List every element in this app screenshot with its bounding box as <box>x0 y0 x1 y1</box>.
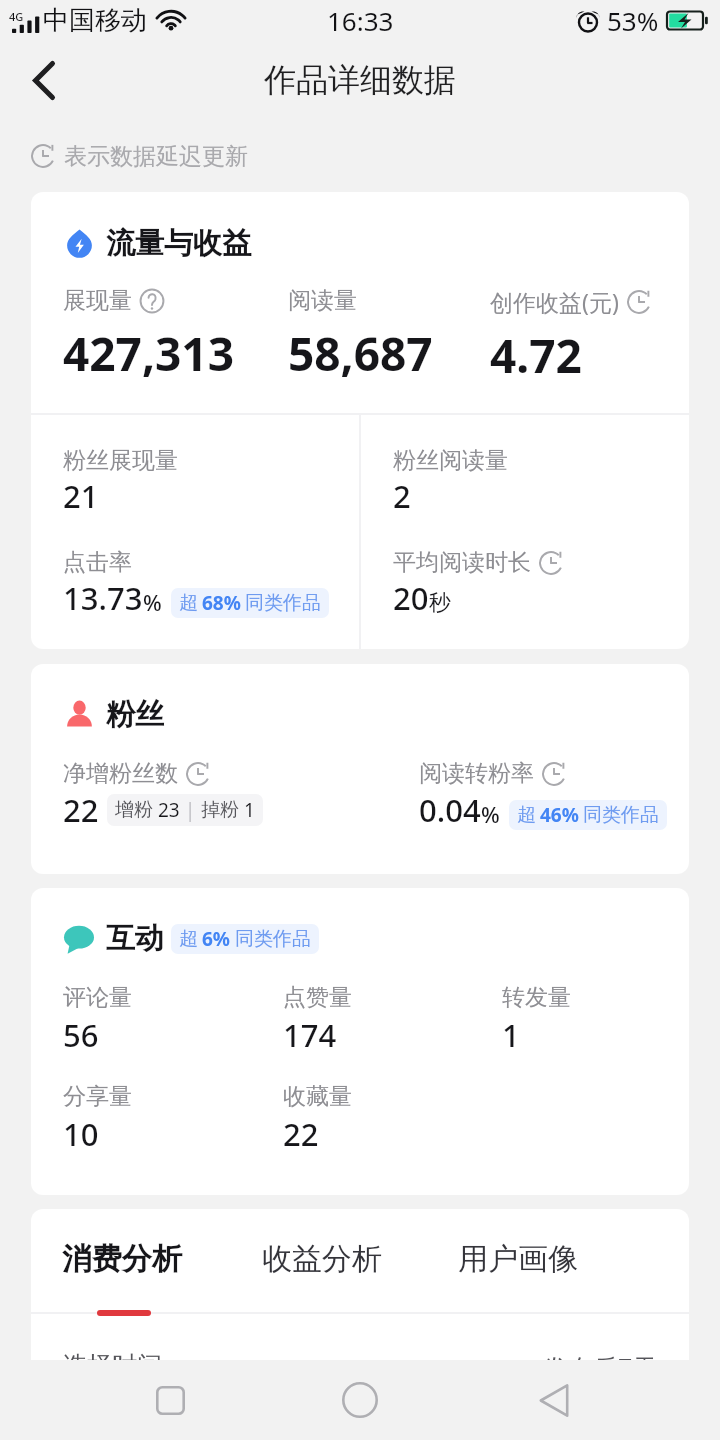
staticText: 阅读转粉率 <box>419 759 534 788</box>
staticText: 20 <box>393 577 429 619</box>
staticText: 22 <box>283 1113 319 1155</box>
button[interactable]: 收益分析 <box>262 1240 458 1312</box>
staticText: 1 <box>502 1014 520 1056</box>
button[interactable]: Home <box>290 1360 430 1440</box>
staticText: 超 <box>179 591 198 615</box>
staticText: 4.72 <box>490 324 582 387</box>
staticText: 表示数据延迟更新 <box>64 142 248 171</box>
staticText: 用户画像 <box>458 1240 578 1278</box>
staticText: 1 <box>244 797 255 823</box>
staticText: 作品详细数据 <box>264 60 456 100</box>
staticText: 427,313 <box>63 322 234 385</box>
staticText: 净增粉丝数 <box>63 759 178 788</box>
staticText: 同类作品 <box>583 803 659 827</box>
staticText: 10 <box>63 1113 99 1155</box>
staticText: 点击率 <box>63 548 132 577</box>
staticText: | <box>185 797 196 823</box>
staticText: 58,687 <box>288 322 433 385</box>
staticText: 中国移动 <box>43 4 147 37</box>
button[interactable]: 用户画像 <box>458 1240 689 1312</box>
staticText: 0.04 <box>419 789 481 831</box>
staticText: 13.73 <box>63 577 143 619</box>
staticText: 超 <box>179 927 198 951</box>
staticText: 秒 <box>429 589 451 617</box>
staticText: 转发量 <box>502 983 571 1012</box>
staticText: % <box>143 587 162 617</box>
button[interactable]: Recent apps <box>100 1360 240 1440</box>
staticText: 174 <box>283 1014 337 1056</box>
staticText: 53% <box>607 3 659 38</box>
staticText: 68% <box>202 590 241 616</box>
staticText: 掉粉 <box>201 798 239 822</box>
staticText: 56 <box>63 1014 99 1056</box>
button[interactable]: Back <box>0 40 88 120</box>
staticText: 4G <box>9 9 24 24</box>
button[interactable]: 消费分析 <box>62 1240 262 1312</box>
staticText: 2 <box>393 475 411 517</box>
staticText: 展现量 <box>63 286 132 315</box>
staticText: 分享量 <box>63 1082 132 1111</box>
staticText: % <box>481 799 500 829</box>
staticText: 增粉 <box>115 798 153 822</box>
staticText: 流量与收益 <box>106 225 251 262</box>
staticText: 21 <box>63 475 99 517</box>
staticText: 收益分析 <box>262 1240 382 1278</box>
staticText: 16:33 <box>327 3 394 38</box>
staticText: 同类作品 <box>245 591 321 615</box>
staticText: 发布后7天 <box>543 1350 658 1384</box>
staticText: 粉丝展现量 <box>63 446 178 475</box>
staticText: 互动 <box>106 920 164 957</box>
staticText: 创作收益(元) <box>490 286 619 317</box>
staticText: 消费分析 <box>62 1240 182 1278</box>
staticText: 粉丝阅读量 <box>393 446 508 475</box>
button[interactable]: Back <box>484 1360 624 1440</box>
staticText: 平均阅读时长 <box>393 548 531 577</box>
staticText: 粉丝 <box>106 696 164 733</box>
staticText: 选择时间 <box>62 1350 162 1381</box>
staticText: 同类作品 <box>235 927 311 951</box>
staticText: 46% <box>540 802 579 828</box>
staticText: 22 <box>63 789 99 831</box>
staticText: 阅读量 <box>288 286 357 315</box>
staticText: 收藏量 <box>283 1082 352 1111</box>
staticText: 23 <box>158 797 180 823</box>
staticText: 点赞量 <box>283 983 352 1012</box>
staticText: 超 <box>517 803 536 827</box>
staticText: 6% <box>202 926 231 952</box>
staticText: 评论量 <box>63 983 132 1012</box>
